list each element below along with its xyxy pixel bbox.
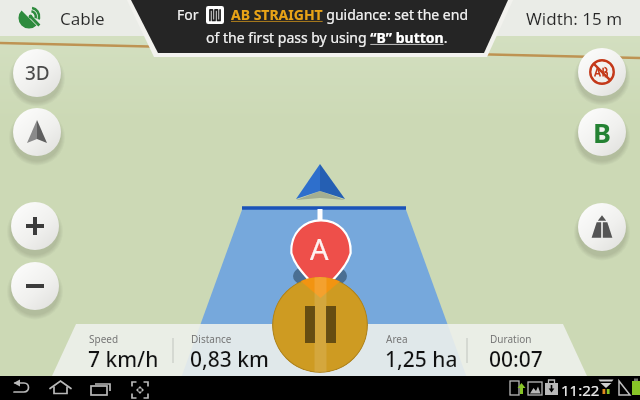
button[interactable]: Set B point xyxy=(578,108,626,156)
button[interactable]: Cancel AB line xyxy=(578,48,626,96)
staticText: 00:07 xyxy=(489,345,543,374)
button[interactable]: Speed xyxy=(89,332,160,375)
staticText: 0,83 km xyxy=(190,345,269,374)
staticText: 11:22 xyxy=(561,380,600,400)
button[interactable]: Distance xyxy=(191,332,270,375)
button[interactable]: Field view xyxy=(578,203,626,251)
button[interactable]: Cable xyxy=(0,0,640,36)
staticText: Cable xyxy=(60,7,105,30)
button[interactable]: Zoom in xyxy=(11,202,59,250)
staticText: A xyxy=(310,229,329,268)
button[interactable]: Zoom out xyxy=(11,262,59,310)
staticText: Distance xyxy=(191,332,232,346)
staticText: Speed xyxy=(89,332,119,346)
staticText: of the first pass by using “B” button. xyxy=(206,28,448,47)
staticText: Duration xyxy=(490,332,532,346)
staticText: B xyxy=(593,114,611,151)
button[interactable]: Recenter map xyxy=(13,108,61,156)
button[interactable]: Duration xyxy=(490,332,544,375)
staticText: 7 km/h xyxy=(88,345,159,374)
button[interactable]: Area xyxy=(386,332,459,375)
staticText: For xyxy=(177,5,199,24)
button[interactable]: Pause xyxy=(272,277,368,373)
staticText: 1,25 ha xyxy=(385,345,458,374)
staticText: AB STRAIGHT guidance: set the end xyxy=(231,5,469,24)
staticText: Width: 15 m xyxy=(526,7,623,30)
staticText: Area xyxy=(386,332,408,346)
button[interactable]: 3D view xyxy=(13,49,61,97)
staticText: 3D xyxy=(25,60,50,86)
